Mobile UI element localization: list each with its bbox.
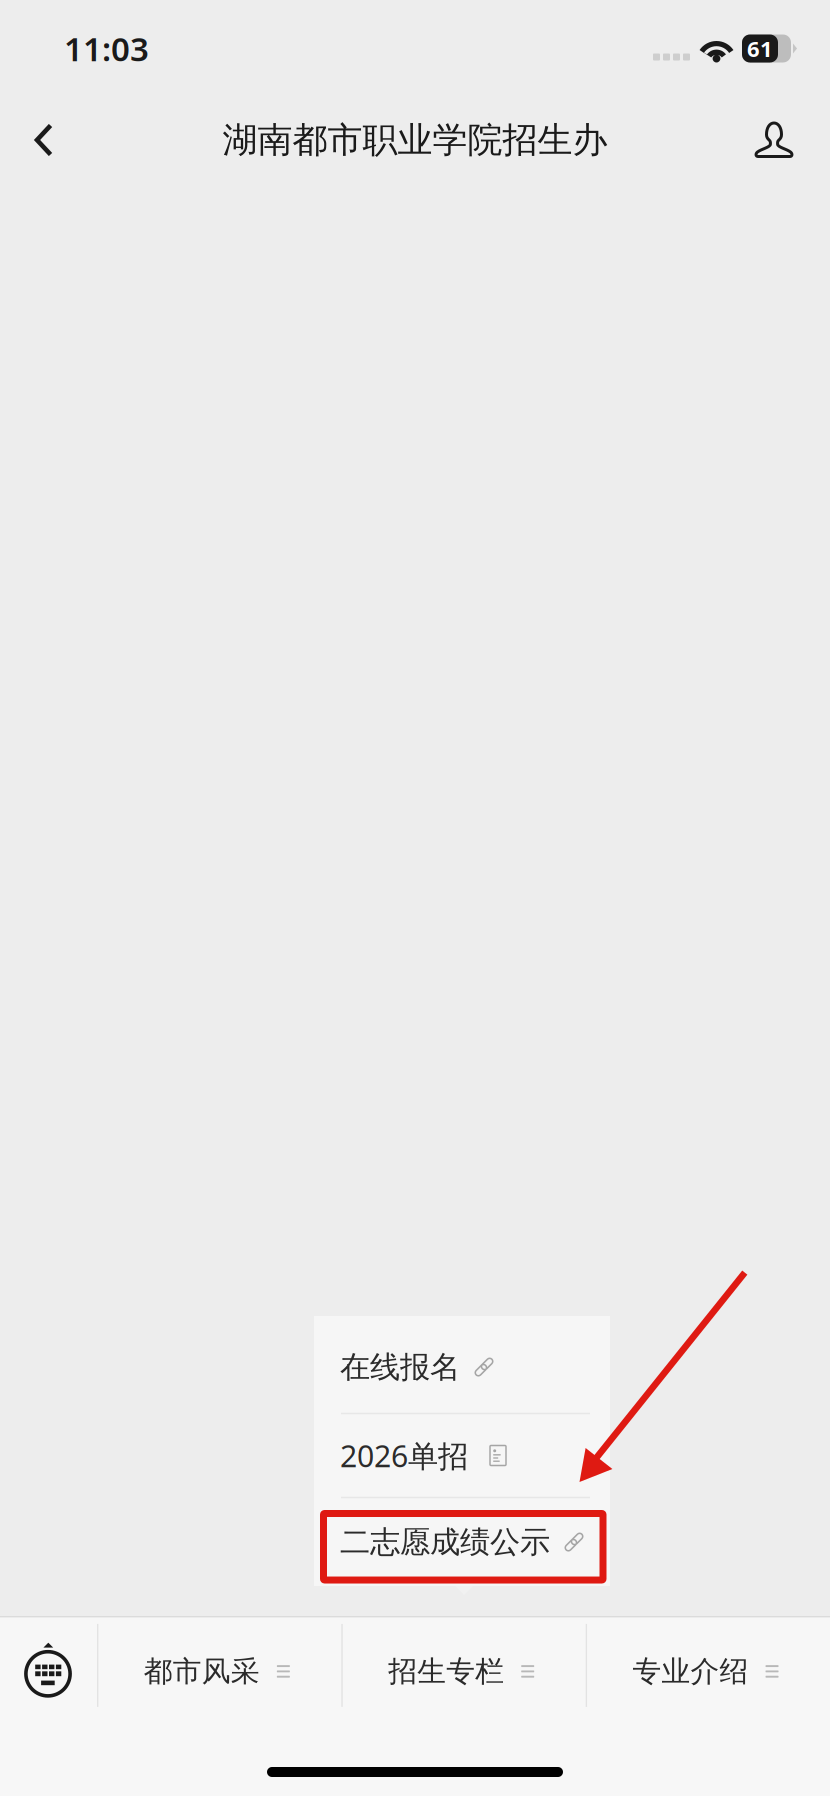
staticText: 61 [747,33,773,63]
button[interactable]: Keyboard [0,1617,97,1713]
button[interactable]: 都市风采 [98,1617,341,1713]
button[interactable]: Back [0,97,84,189]
staticText: 2026单招 [340,1435,468,1476]
staticText: 湖南都市职业学院招生办 [222,118,607,162]
button[interactable]: 专业介绍 [587,1617,830,1713]
staticText: 在线报名 [340,1348,460,1386]
staticText: 都市风采 [144,1653,260,1689]
button[interactable]: 二志愿成绩公示 [314,1498,610,1586]
staticText: 二志愿成绩公示 [340,1523,550,1561]
button[interactable]: 在线报名 [314,1316,610,1413]
staticText: 专业介绍 [632,1653,748,1689]
staticText: 11:03 [64,26,149,71]
button[interactable]: 招生专栏 [343,1617,586,1713]
button[interactable]: Profile [731,97,815,189]
staticText: 招生专栏 [388,1653,504,1689]
button[interactable]: 2026单招 [314,1414,610,1497]
